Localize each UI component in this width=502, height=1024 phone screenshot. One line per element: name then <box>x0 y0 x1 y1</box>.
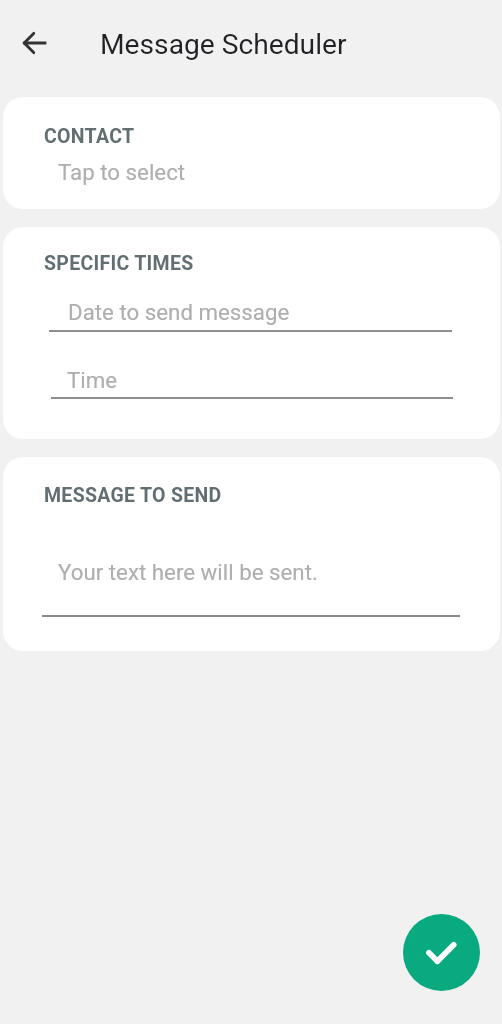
staticText: CONTACT <box>44 125 135 148</box>
button[interactable]: Time <box>51 357 453 400</box>
button[interactable]: Tap to select <box>23 149 480 193</box>
staticText: SPECIFIC TIMES <box>44 252 194 275</box>
button[interactable]: Your text here will be sent. <box>42 543 460 617</box>
staticText: Message Scheduler <box>100 28 347 61</box>
staticText: MESSAGE TO SEND <box>44 484 222 507</box>
staticText: Time <box>67 367 118 393</box>
staticText: Your text here will be sent. <box>58 559 318 585</box>
staticText: Tap to select <box>58 159 186 185</box>
staticText: Date to send message <box>68 299 290 325</box>
button[interactable]: Schedule message <box>403 914 480 991</box>
button[interactable]: Navigate up <box>7 16 61 70</box>
button[interactable]: Date to send message <box>49 289 452 332</box>
